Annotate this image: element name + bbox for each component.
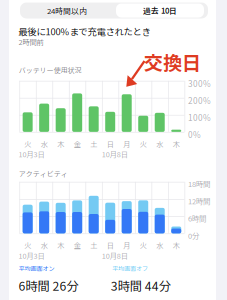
staticText: 18時間 <box>188 178 210 189</box>
staticText: 日 <box>107 139 114 149</box>
staticText: 0分 <box>188 230 199 241</box>
staticText: 月 <box>123 139 130 149</box>
button[interactable]: 過去 10日 <box>116 3 204 17</box>
staticText: 木 <box>173 240 180 250</box>
staticText: 金 <box>74 139 81 149</box>
staticText: 6時間 26分 <box>18 276 78 294</box>
staticText: 6時間 <box>188 213 206 224</box>
staticText: 0% <box>188 128 201 140</box>
staticText: 100% <box>188 111 211 123</box>
staticText: 10月8日 <box>102 149 128 159</box>
staticText: 土 <box>90 139 97 149</box>
staticText: 3時間 44分 <box>111 276 171 294</box>
staticText: アクティビティ <box>19 168 68 178</box>
staticText: 10月3日 <box>19 250 45 261</box>
staticText: 2時間前 <box>19 36 44 47</box>
staticText: 金 <box>74 240 81 250</box>
staticText: 交換日 <box>144 48 201 76</box>
staticText: 水 <box>41 139 48 149</box>
staticText: 火 <box>140 240 147 250</box>
staticText: 10月8日 <box>102 250 128 261</box>
staticText: 木 <box>57 240 64 250</box>
staticText: 平均画面オフ <box>112 264 148 273</box>
staticText: 日 <box>107 240 114 250</box>
staticText: 水 <box>156 240 163 250</box>
staticText: 水 <box>156 139 163 149</box>
staticText: 火 <box>140 139 147 149</box>
staticText: 24時間以内 <box>47 5 87 16</box>
staticText: 12時間 <box>188 196 210 206</box>
button[interactable]: 24時間以内 <box>20 2 114 18</box>
staticText: 最後に100%まで充電されたとき <box>19 24 151 38</box>
staticText: 火 <box>24 240 31 250</box>
staticText: 300% <box>188 77 211 89</box>
staticText: 火 <box>24 139 31 149</box>
staticText: バッテリー使用状況 <box>19 65 82 75</box>
staticText: 土 <box>90 240 97 250</box>
staticText: 木 <box>173 139 180 149</box>
staticText: 月 <box>123 240 130 250</box>
staticText: 水 <box>41 240 48 250</box>
staticText: 木 <box>57 139 64 149</box>
staticText: 平均画面オン <box>19 264 55 273</box>
staticText: 10月3日 <box>19 149 45 159</box>
staticText: 200% <box>188 94 211 106</box>
staticText: 過去 10日 <box>143 5 177 16</box>
